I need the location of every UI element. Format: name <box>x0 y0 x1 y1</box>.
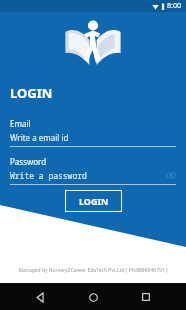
button[interactable]: Home <box>80 284 106 310</box>
staticText: Write a password <box>10 170 165 181</box>
button[interactable]: Show password <box>165 171 176 180</box>
staticText: Write a email id <box>10 132 69 143</box>
button[interactable]: Back <box>27 284 53 310</box>
staticText: Email <box>10 118 31 129</box>
staticText: Managed by Nursery2Career EduTech Pvt.Lt… <box>18 267 168 274</box>
staticText: 8:00 <box>167 1 181 11</box>
button[interactable]: Recent apps <box>133 284 159 310</box>
staticText: LOGIN <box>10 84 53 102</box>
button[interactable]: LOGIN <box>65 190 122 212</box>
staticText: Password <box>10 156 47 167</box>
button[interactable]: Write a password <box>10 170 176 185</box>
staticText: LOGIN <box>79 195 109 207</box>
button[interactable]: Write a email id <box>10 132 176 147</box>
